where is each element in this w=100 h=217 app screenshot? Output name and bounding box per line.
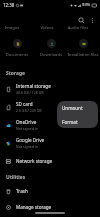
staticText: Network storage xyxy=(16,158,53,164)
button[interactable]: SD card xyxy=(0,99,100,115)
button[interactable]: Installation files xyxy=(67,39,99,58)
staticText: 93% xyxy=(82,2,91,8)
button[interactable]: Format xyxy=(57,115,98,128)
staticText: Utilities xyxy=(6,174,26,181)
staticText: Not signed in xyxy=(16,144,38,149)
button[interactable]: Search xyxy=(74,13,88,27)
button[interactable]: Documents xyxy=(1,39,33,58)
staticText: 2.6 GB / 249 GB xyxy=(16,108,42,113)
button[interactable]: Trash xyxy=(0,183,100,199)
button[interactable]: Internal storage xyxy=(0,81,100,97)
staticText: Google Drive xyxy=(16,137,45,143)
staticText: Images xyxy=(0,25,28,31)
staticText: Audio files xyxy=(62,25,94,31)
button[interactable]: Downloads xyxy=(35,39,67,58)
staticText: 12:38 xyxy=(3,2,15,8)
staticText: Unmount xyxy=(62,105,83,111)
staticText: Videos xyxy=(31,25,63,31)
button[interactable]: Unmount xyxy=(57,101,98,115)
staticText: Format xyxy=(62,119,78,125)
staticText: SD card xyxy=(16,101,33,107)
staticText: Internal storage xyxy=(16,83,51,89)
staticText: 40.6 GB / 128 GB xyxy=(16,90,44,95)
staticText: OneDrive xyxy=(16,119,37,125)
button[interactable]: OneDrive xyxy=(0,117,100,133)
button[interactable]: Images xyxy=(0,24,28,31)
staticText: Not signed in xyxy=(16,126,38,131)
button[interactable]: Videos xyxy=(31,24,63,31)
button[interactable]: Audio files xyxy=(62,24,94,31)
button[interactable]: Google Drive xyxy=(0,135,100,151)
staticText: Downloads xyxy=(35,52,67,58)
button[interactable]: More options xyxy=(85,13,99,27)
staticText: Documents xyxy=(1,52,33,58)
staticText: Storage xyxy=(6,70,25,77)
button[interactable]: Network storage xyxy=(0,153,100,169)
button[interactable]: Manage storage xyxy=(0,199,100,215)
staticText: Trash xyxy=(16,188,28,194)
staticText: Installation files xyxy=(67,52,99,58)
staticText: Manage storage xyxy=(16,204,52,210)
